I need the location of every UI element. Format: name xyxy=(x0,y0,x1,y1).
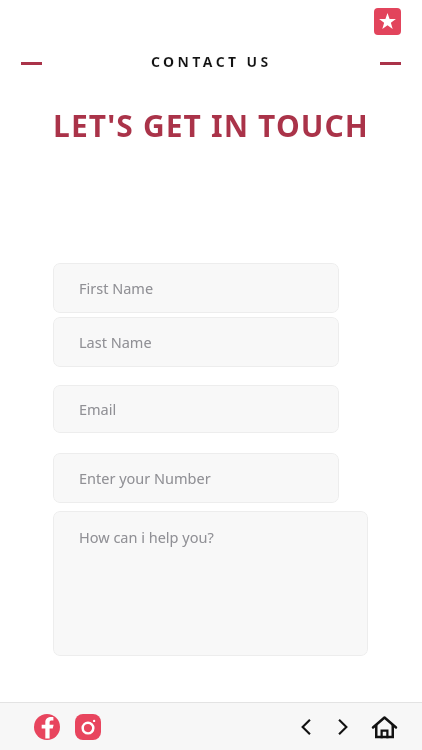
button[interactable]: Instagram xyxy=(75,714,101,740)
button[interactable]: Back xyxy=(290,711,322,743)
staticText: Last Name xyxy=(79,332,152,352)
button[interactable]: Favorite xyxy=(374,8,401,35)
button[interactable]: Home xyxy=(368,711,400,743)
button[interactable]: How can i help you? xyxy=(53,511,368,656)
staticText: CONTACT US xyxy=(151,52,272,71)
button[interactable]: Forward xyxy=(327,711,359,743)
button[interactable]: Facebook xyxy=(34,714,60,740)
button[interactable]: First Name xyxy=(53,263,339,313)
button[interactable]: Last Name xyxy=(53,317,339,367)
staticText: How can i help you? xyxy=(79,527,214,547)
button[interactable]: Email xyxy=(53,385,339,433)
button[interactable]: Enter your Number xyxy=(53,453,339,503)
staticText: Enter your Number xyxy=(79,468,211,488)
staticText: First Name xyxy=(79,278,154,298)
staticText: Email xyxy=(79,399,117,419)
staticText: LET'S GET IN TOUCH xyxy=(53,105,369,146)
